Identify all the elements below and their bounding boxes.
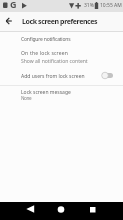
staticText: G bbox=[10, 0, 17, 10]
staticText: Configure notifications bbox=[21, 36, 71, 43]
staticText: 10:55 AM bbox=[100, 2, 122, 9]
button[interactable] bbox=[84, 202, 102, 220]
staticText: On the lock screen bbox=[21, 50, 69, 57]
button[interactable]: Lock screen message bbox=[0, 87, 123, 105]
staticText: 31% bbox=[84, 2, 94, 9]
button[interactable] bbox=[52, 202, 70, 220]
button[interactable]: Add users from lock screen bbox=[0, 67, 123, 85]
staticText: Add users from lock screen bbox=[21, 73, 85, 80]
button[interactable] bbox=[22, 202, 40, 220]
button[interactable] bbox=[101, 71, 114, 80]
staticText: Lock screen preferences bbox=[22, 17, 98, 27]
staticText: Show all notification content bbox=[21, 58, 88, 65]
button[interactable]: On the lock screen bbox=[0, 48, 123, 66]
button[interactable] bbox=[0, 12, 20, 31]
staticText: None bbox=[21, 95, 32, 101]
button[interactable]: Configure notifications bbox=[0, 31, 123, 48]
staticText: Lock screen message bbox=[21, 89, 71, 96]
